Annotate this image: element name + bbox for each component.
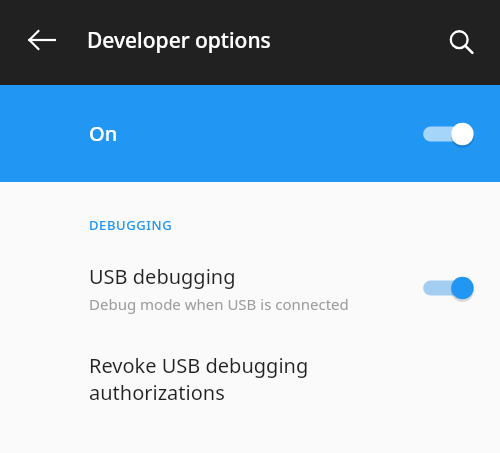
staticText: authorizations: [89, 379, 225, 406]
staticText: USB debugging: [89, 263, 236, 290]
staticText: Debug mode when USB is connected: [89, 294, 349, 314]
button[interactable]: Revoke USB debugging: [0, 334, 500, 444]
staticText: DEBUGGING: [89, 216, 173, 234]
staticText: Revoke USB debugging: [89, 352, 309, 379]
button[interactable]: Search: [438, 19, 486, 67]
button[interactable]: On: [0, 85, 500, 182]
button[interactable]: Back: [18, 16, 66, 64]
button[interactable]: USB debugging: [0, 242, 500, 334]
staticText: On: [89, 120, 118, 147]
button[interactable]: Toggle: [422, 114, 478, 154]
button[interactable]: Toggle: [422, 268, 478, 308]
staticText: Developer options: [87, 26, 271, 55]
